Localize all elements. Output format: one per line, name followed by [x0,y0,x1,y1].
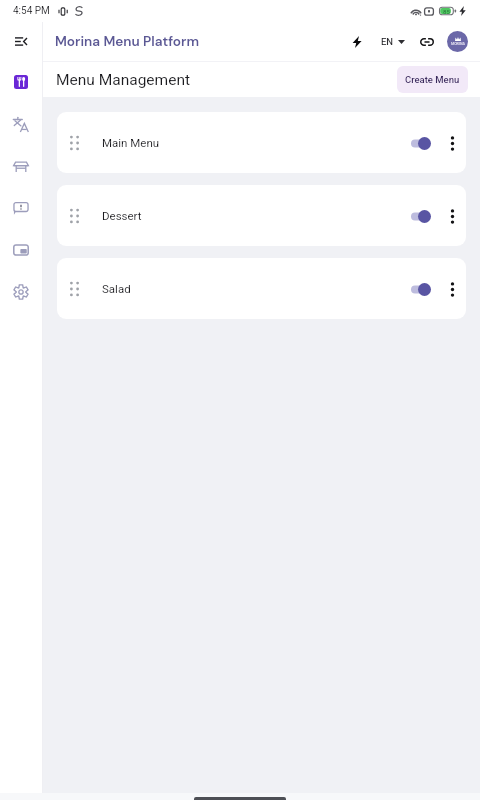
button[interactable]: Menus [0,61,42,103]
button[interactable]: Toggle Main Menu [404,129,438,157]
button[interactable]: Tables [0,145,42,187]
button[interactable]: Settings [0,271,42,313]
staticText: Morina Menu Platform [55,33,199,51]
button[interactable]: More options for Main Menu [441,128,463,158]
button[interactable]: More options for Salad [441,274,463,304]
button[interactable]: Display [0,229,42,271]
staticText: EN [381,36,394,47]
button[interactable]: More options for Dessert [441,201,463,231]
button[interactable]: Quick actions [346,31,368,53]
button[interactable]: Collapse navigation menu [0,22,42,61]
staticText: Salad [102,282,131,295]
button[interactable]: Main Menu [57,112,466,173]
button[interactable]: Salad [57,258,466,319]
staticText: Create Menu [405,74,460,85]
staticText: Dessert [102,209,142,222]
staticText: 4:54 PM [13,5,50,17]
button[interactable]: Toggle Salad [404,275,438,303]
button[interactable]: Copy link [416,31,438,53]
button[interactable]: Create Menu [397,66,468,93]
button[interactable]: Toggle Dessert [404,202,438,230]
staticText: 85 [443,8,450,15]
button[interactable]: Dessert [57,185,466,246]
button[interactable]: Feedback [0,187,42,229]
button[interactable]: Account [447,31,468,52]
button[interactable]: Translations [0,103,42,145]
button[interactable]: EN [379,31,407,52]
staticText: MORINA [451,42,465,46]
staticText: Main Menu [102,136,160,149]
staticText: Menu Management [56,71,191,89]
